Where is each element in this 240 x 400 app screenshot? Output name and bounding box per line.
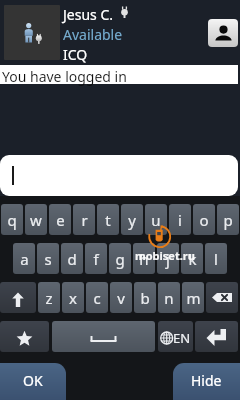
button[interactable]: u [145, 204, 167, 235]
staticText: e [56, 210, 65, 230]
staticText: t [105, 210, 111, 230]
button[interactable]: c [86, 282, 108, 313]
button[interactable]: q [1, 204, 23, 235]
staticText: o [199, 210, 209, 230]
button[interactable]: b [134, 282, 156, 313]
button[interactable]: m [182, 282, 204, 313]
button[interactable]: Space [52, 321, 155, 352]
staticText: f [93, 249, 99, 269]
staticText: s [44, 249, 52, 269]
button[interactable]: r [73, 204, 95, 235]
button[interactable]: Message input [0, 155, 238, 196]
staticText: b [140, 288, 150, 308]
staticText: p [223, 210, 233, 230]
staticText: r [81, 210, 88, 230]
staticText: h [139, 249, 149, 269]
staticText: g [115, 249, 125, 269]
button[interactable]: Contact details [208, 19, 238, 47]
staticText: a [20, 249, 29, 269]
staticText: i [178, 210, 182, 230]
staticText: ICQ [63, 45, 88, 64]
staticText: Available [63, 25, 123, 44]
button[interactable]: v [110, 282, 132, 313]
button[interactable]: n [158, 282, 180, 313]
staticText: j [166, 249, 170, 269]
button[interactable]: f [85, 243, 107, 274]
button[interactable]: h [133, 243, 155, 274]
button[interactable]: s [37, 243, 59, 274]
button[interactable]: Enter [195, 321, 238, 352]
button[interactable]: x [62, 282, 84, 313]
staticText: EN [173, 329, 191, 347]
staticText: mobiset.ru [135, 248, 195, 263]
staticText: d [67, 249, 77, 269]
button[interactable]: You have logged in [0, 65, 238, 84]
button[interactable]: Contact avatar [4, 5, 60, 60]
staticText: c [93, 288, 101, 308]
button[interactable]: t [97, 204, 119, 235]
button[interactable]: g [109, 243, 131, 274]
staticText: k [188, 249, 197, 269]
button[interactable]: Symbols [0, 321, 49, 352]
button[interactable]: l [205, 243, 227, 274]
staticText: z [45, 288, 53, 308]
button[interactable]: i [169, 204, 191, 235]
button[interactable]: z [38, 282, 60, 313]
button[interactable]: k [181, 243, 203, 274]
button[interactable]: o [193, 204, 215, 235]
button[interactable]: w [25, 204, 47, 235]
staticText: You have logged in [2, 67, 127, 86]
button[interactable]: Hide [173, 363, 240, 400]
staticText: u [151, 210, 161, 230]
button[interactable]: p [217, 204, 239, 235]
button[interactable]: OK [0, 363, 66, 400]
button[interactable]: e [49, 204, 71, 235]
button[interactable]: Backspace [206, 282, 238, 313]
staticText: q [7, 210, 17, 230]
staticText: m [186, 288, 201, 308]
staticText: x [69, 288, 77, 308]
button[interactable]: d [61, 243, 83, 274]
staticText: Hide [191, 371, 222, 390]
staticText: Jesus C. [63, 5, 114, 24]
staticText: v [117, 288, 125, 308]
button[interactable]: Shift [0, 282, 36, 313]
staticText: w [30, 210, 42, 230]
staticText: l [214, 249, 218, 269]
button[interactable]: y [121, 204, 143, 235]
button[interactable]: Change language [158, 321, 193, 352]
staticText: n [164, 288, 174, 308]
button[interactable]: j [157, 243, 179, 274]
button[interactable]: a [13, 243, 35, 274]
staticText: OK [23, 371, 43, 390]
staticText: y [128, 210, 136, 230]
